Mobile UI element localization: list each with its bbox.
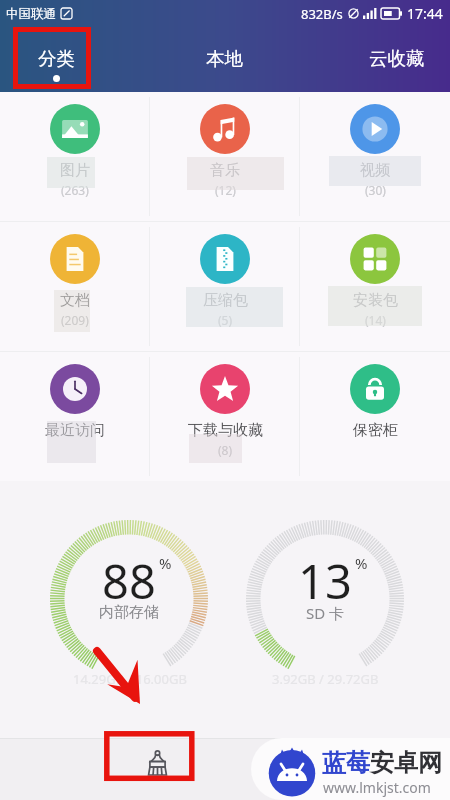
button[interactable]: 最近访问: [0, 352, 150, 481]
staticText: (209): [61, 312, 89, 328]
button[interactable]: 云收藏: [352, 27, 442, 92]
staticText: 最近访问: [45, 421, 105, 440]
button[interactable]: 压缩包: [150, 222, 300, 351]
staticText: (12): [215, 182, 236, 198]
staticText: %: [159, 553, 172, 573]
staticText: (14): [365, 312, 386, 328]
staticText: 分类: [38, 47, 75, 70]
button[interactable]: 分类: [11, 27, 101, 92]
button[interactable]: 文档: [0, 222, 150, 351]
button[interactable]: 保密柜: [300, 352, 450, 481]
staticText: 云收藏: [369, 47, 425, 70]
button[interactable]: 安装包: [300, 222, 450, 351]
staticText: 832B/s: [301, 5, 343, 23]
staticText: 内部存储: [99, 603, 159, 622]
staticText: (5): [218, 312, 233, 328]
staticText: 保密柜: [353, 421, 398, 440]
button[interactable]: Clean up storage: [116, 741, 198, 785]
staticText: 13: [298, 549, 352, 613]
staticText: 本地: [206, 47, 243, 70]
staticText: 压缩包: [203, 291, 248, 310]
staticText: 视频: [360, 161, 390, 180]
staticText: 文档: [60, 291, 90, 310]
button[interactable]: 音乐: [150, 92, 300, 221]
button[interactable]: 视频: [300, 92, 450, 221]
button[interactable]: 下载与收藏: [150, 352, 300, 481]
staticText: 17:44: [407, 4, 443, 23]
staticText: 图片: [60, 161, 90, 180]
staticText: 88: [102, 549, 156, 613]
button[interactable]: 图片: [0, 92, 150, 221]
staticText: 下载与收藏: [188, 421, 263, 440]
staticText: 3.92GB / 29.72GB: [272, 670, 379, 688]
staticText: 安卓网: [370, 748, 442, 778]
staticText: 蓝莓: [322, 748, 370, 778]
staticText: %: [355, 553, 368, 573]
staticText: SD 卡: [306, 603, 345, 623]
staticText: (263): [61, 182, 89, 198]
button[interactable]: 本地: [179, 27, 269, 92]
staticText: 中国联通: [6, 6, 56, 22]
staticText: www.lmkjst.com: [323, 778, 431, 797]
staticText: 14.29GB / 16.00GB: [73, 670, 187, 688]
staticText: (30): [365, 182, 386, 198]
staticText: (8): [218, 442, 233, 458]
staticText: 安装包: [353, 291, 398, 310]
staticText: 音乐: [210, 161, 240, 180]
